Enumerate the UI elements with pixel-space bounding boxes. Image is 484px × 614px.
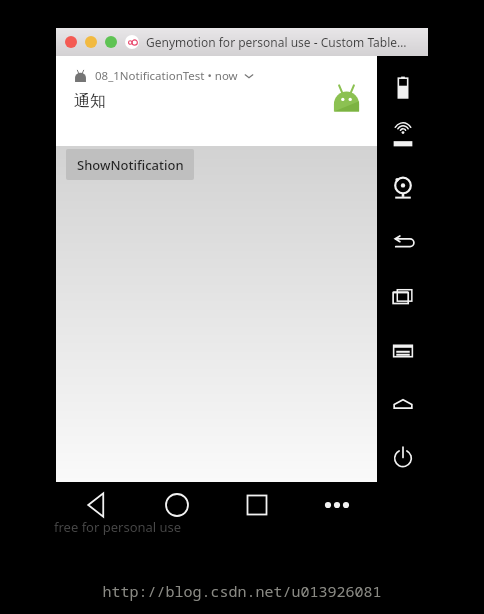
button[interactable]: More options bbox=[297, 482, 377, 528]
staticText: free for personal use bbox=[54, 518, 182, 536]
staticText: Genymotion for personal use - Custom Tab… bbox=[146, 34, 407, 50]
button[interactable]: Zoom bbox=[105, 36, 117, 48]
staticText: ShowNotification bbox=[77, 156, 184, 174]
button[interactable]: Multi window bbox=[386, 280, 420, 314]
button[interactable]: Rotate bbox=[386, 226, 420, 260]
button[interactable]: Home bbox=[137, 482, 217, 528]
staticText: http://blog.csdn.net/u013926081 bbox=[102, 581, 382, 601]
button[interactable]: Camera bbox=[386, 170, 420, 204]
button[interactable]: Minimise bbox=[85, 36, 97, 48]
button[interactable]: Power bbox=[386, 440, 420, 474]
button[interactable]: Close bbox=[65, 36, 77, 48]
button[interactable]: Screen bbox=[386, 388, 420, 422]
button[interactable]: Battery bbox=[386, 70, 420, 104]
button[interactable]: Recent apps bbox=[217, 482, 297, 528]
button[interactable]: Back bbox=[56, 482, 137, 528]
staticText: 通知 bbox=[74, 91, 106, 111]
button[interactable]: GPS bbox=[386, 120, 420, 154]
staticText: 08_1NotificationTest • now bbox=[95, 68, 238, 84]
button[interactable]: Keyboard bbox=[386, 334, 420, 368]
button[interactable]: Expand notification bbox=[244, 71, 254, 81]
button[interactable]: ShowNotification bbox=[66, 149, 194, 180]
